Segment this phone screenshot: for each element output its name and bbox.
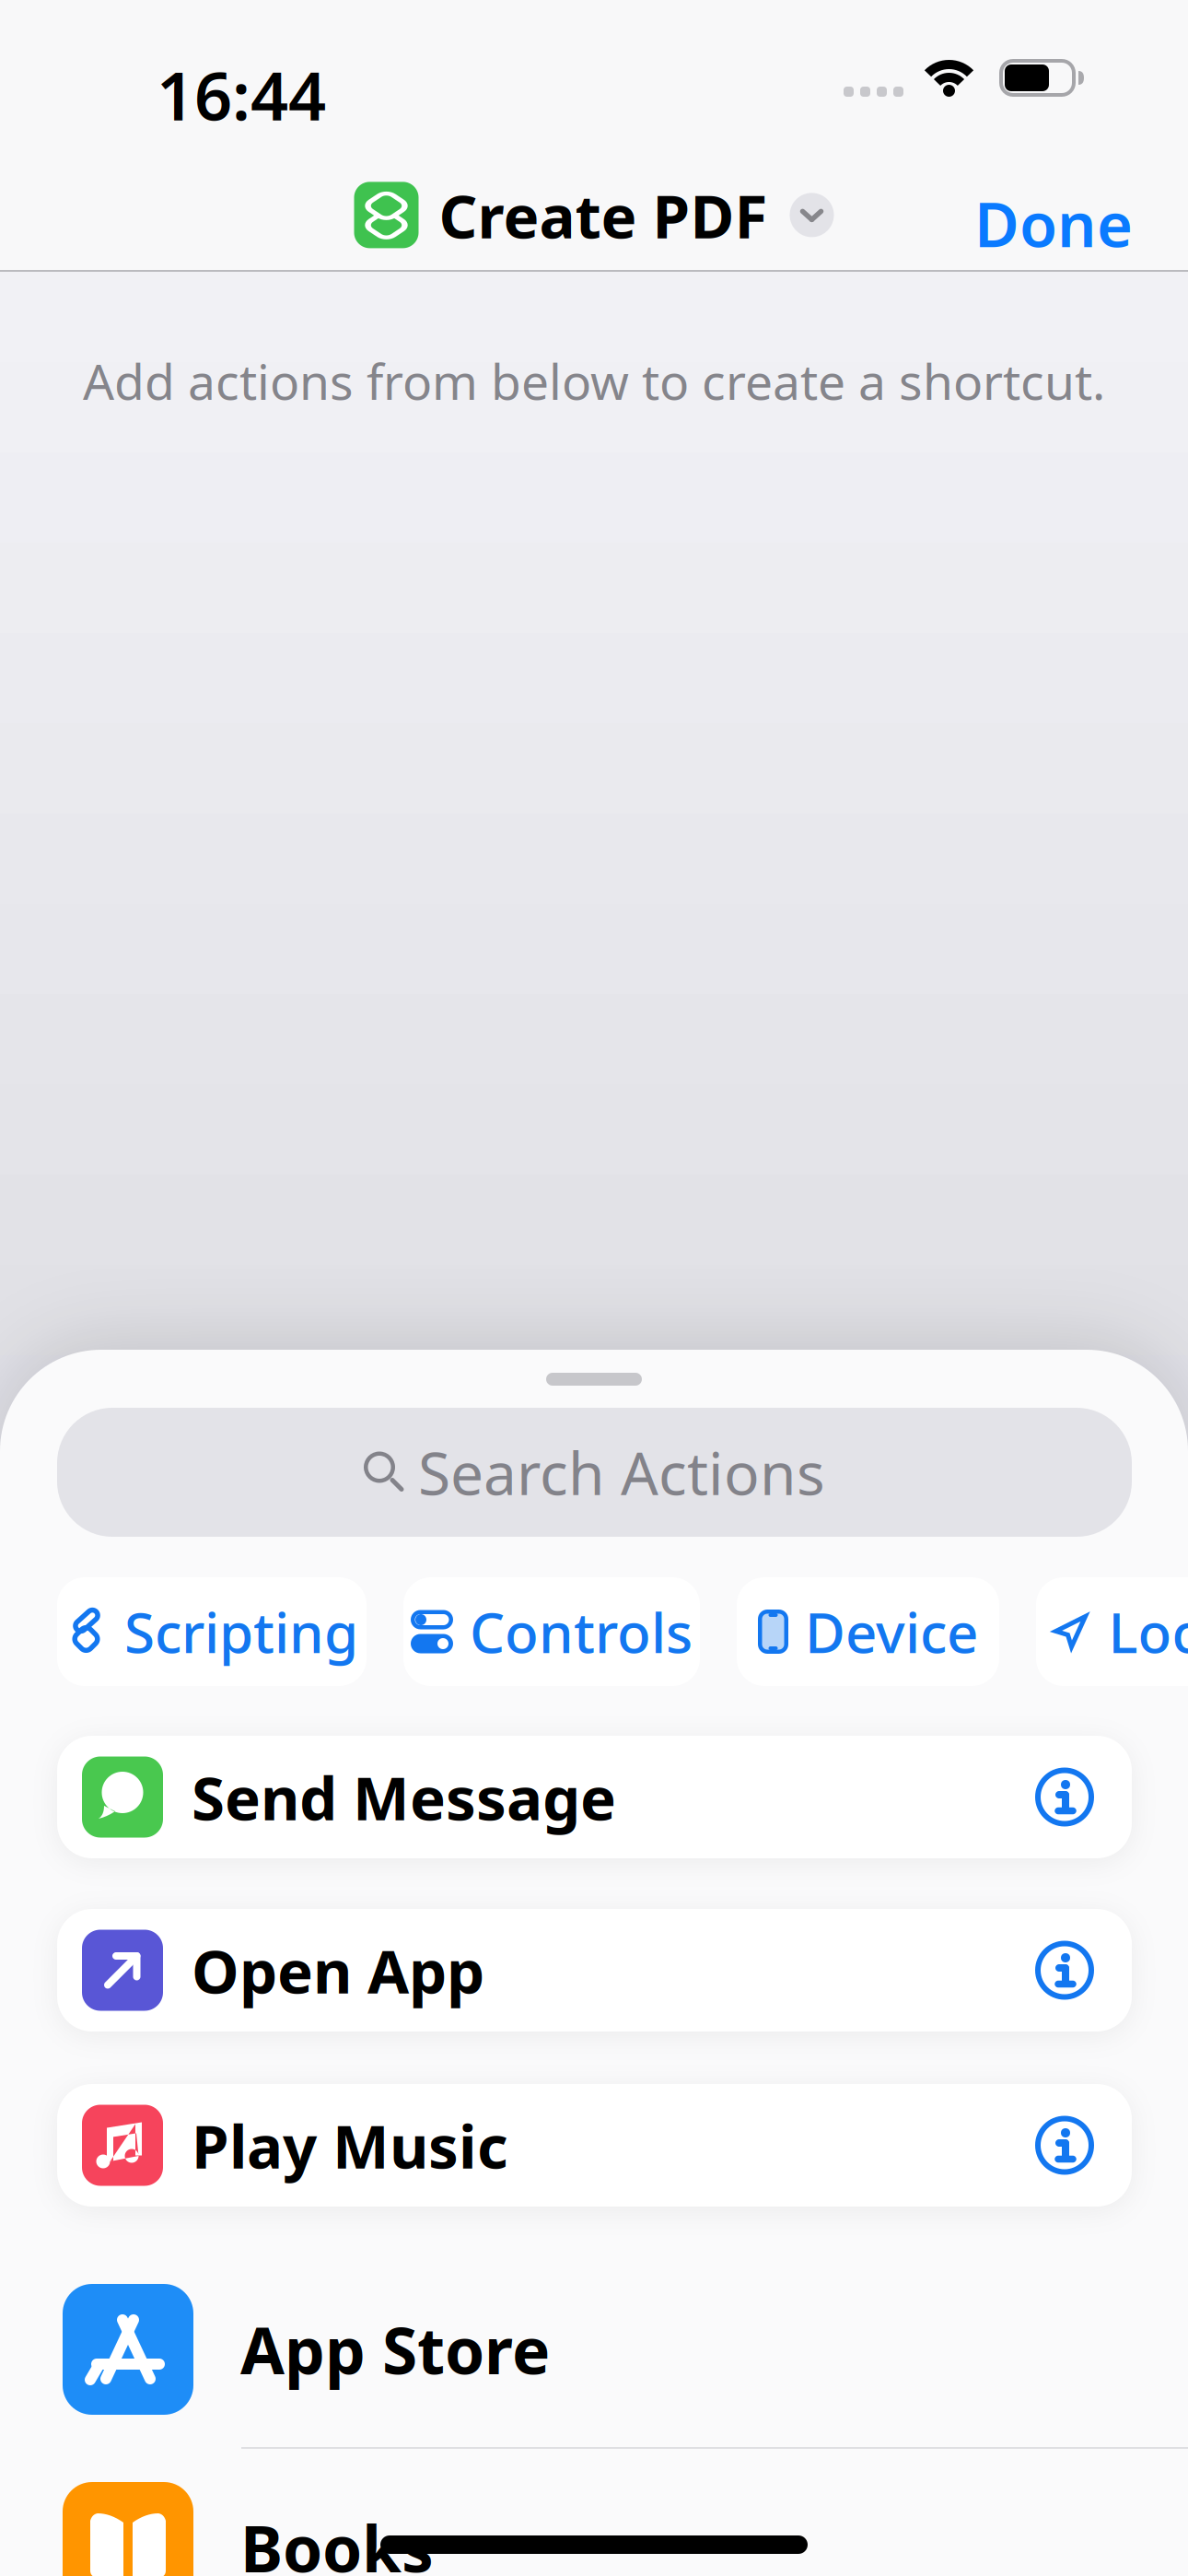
button[interactable]: Controls [403,1577,700,1686]
staticText: Open App [192,1930,484,2010]
staticText: Send Message [192,1757,616,1837]
button[interactable]: Show Info [1035,2116,1094,2175]
button[interactable]: Device [737,1577,999,1686]
button[interactable]: App Store [63,2284,1188,2415]
staticText: Books [240,2505,434,2576]
button[interactable]: Show Info [1035,1768,1094,1827]
staticText: Controls [470,1595,693,1668]
button[interactable]: Show Info [1035,1941,1094,2000]
staticText: Create PDF [439,175,768,255]
staticText: Device [805,1595,978,1668]
staticText: Location [1108,1595,1188,1668]
staticText: Search Actions [418,1433,825,1511]
button[interactable]: Send Message [57,1736,1132,1858]
staticText: Play Music [192,2105,508,2185]
button[interactable]: Scripting [57,1577,367,1686]
staticText: Done [974,182,1133,264]
button[interactable]: Play Music [57,2084,1132,2207]
button[interactable]: Open App [57,1909,1132,2032]
button[interactable]: Books [63,2482,1188,2576]
button[interactable]: Shortcut Title Menu [354,175,834,255]
staticText: Add actions from below to create a short… [83,348,1105,413]
staticText: Scripting [124,1595,358,1668]
button[interactable]: Done [974,182,1133,264]
button[interactable]: Search Actions [57,1408,1132,1537]
staticText: 16:44 [157,51,326,139]
staticText: App Store [240,2307,550,2392]
button[interactable]: Location [1036,1577,1188,1686]
